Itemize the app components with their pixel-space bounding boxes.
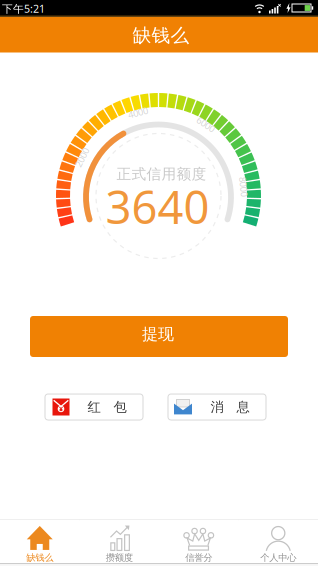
button[interactable]: 缺钱么 <box>0 520 79 563</box>
staticText: 8000 <box>233 180 253 193</box>
staticText: 缺钱么 <box>132 24 189 47</box>
staticText: 3640 <box>105 176 209 237</box>
staticText: 4000 <box>128 106 148 119</box>
staticText: 下午5:21 <box>2 1 45 16</box>
staticText: 个人中心 <box>260 552 296 563</box>
button[interactable]: 红 包 <box>45 394 143 420</box>
staticText: 2000 <box>72 151 92 164</box>
staticText: 缺钱么 <box>26 552 53 563</box>
button[interactable]: 个人中心 <box>238 520 318 563</box>
staticText: 红 包 <box>87 399 126 415</box>
button[interactable]: 提现 <box>30 316 288 357</box>
staticText: 6000 <box>196 118 216 130</box>
staticText: 正式信用额度 <box>116 165 206 183</box>
staticText: 消 息 <box>210 399 249 415</box>
staticText: 提现 <box>142 324 174 344</box>
staticText: 信誉分 <box>185 552 212 563</box>
button[interactable]: 信誉分 <box>159 520 238 563</box>
staticText: 攒额度 <box>106 552 133 563</box>
button[interactable]: 攒额度 <box>79 520 159 563</box>
button[interactable]: 消 息 <box>168 394 266 420</box>
